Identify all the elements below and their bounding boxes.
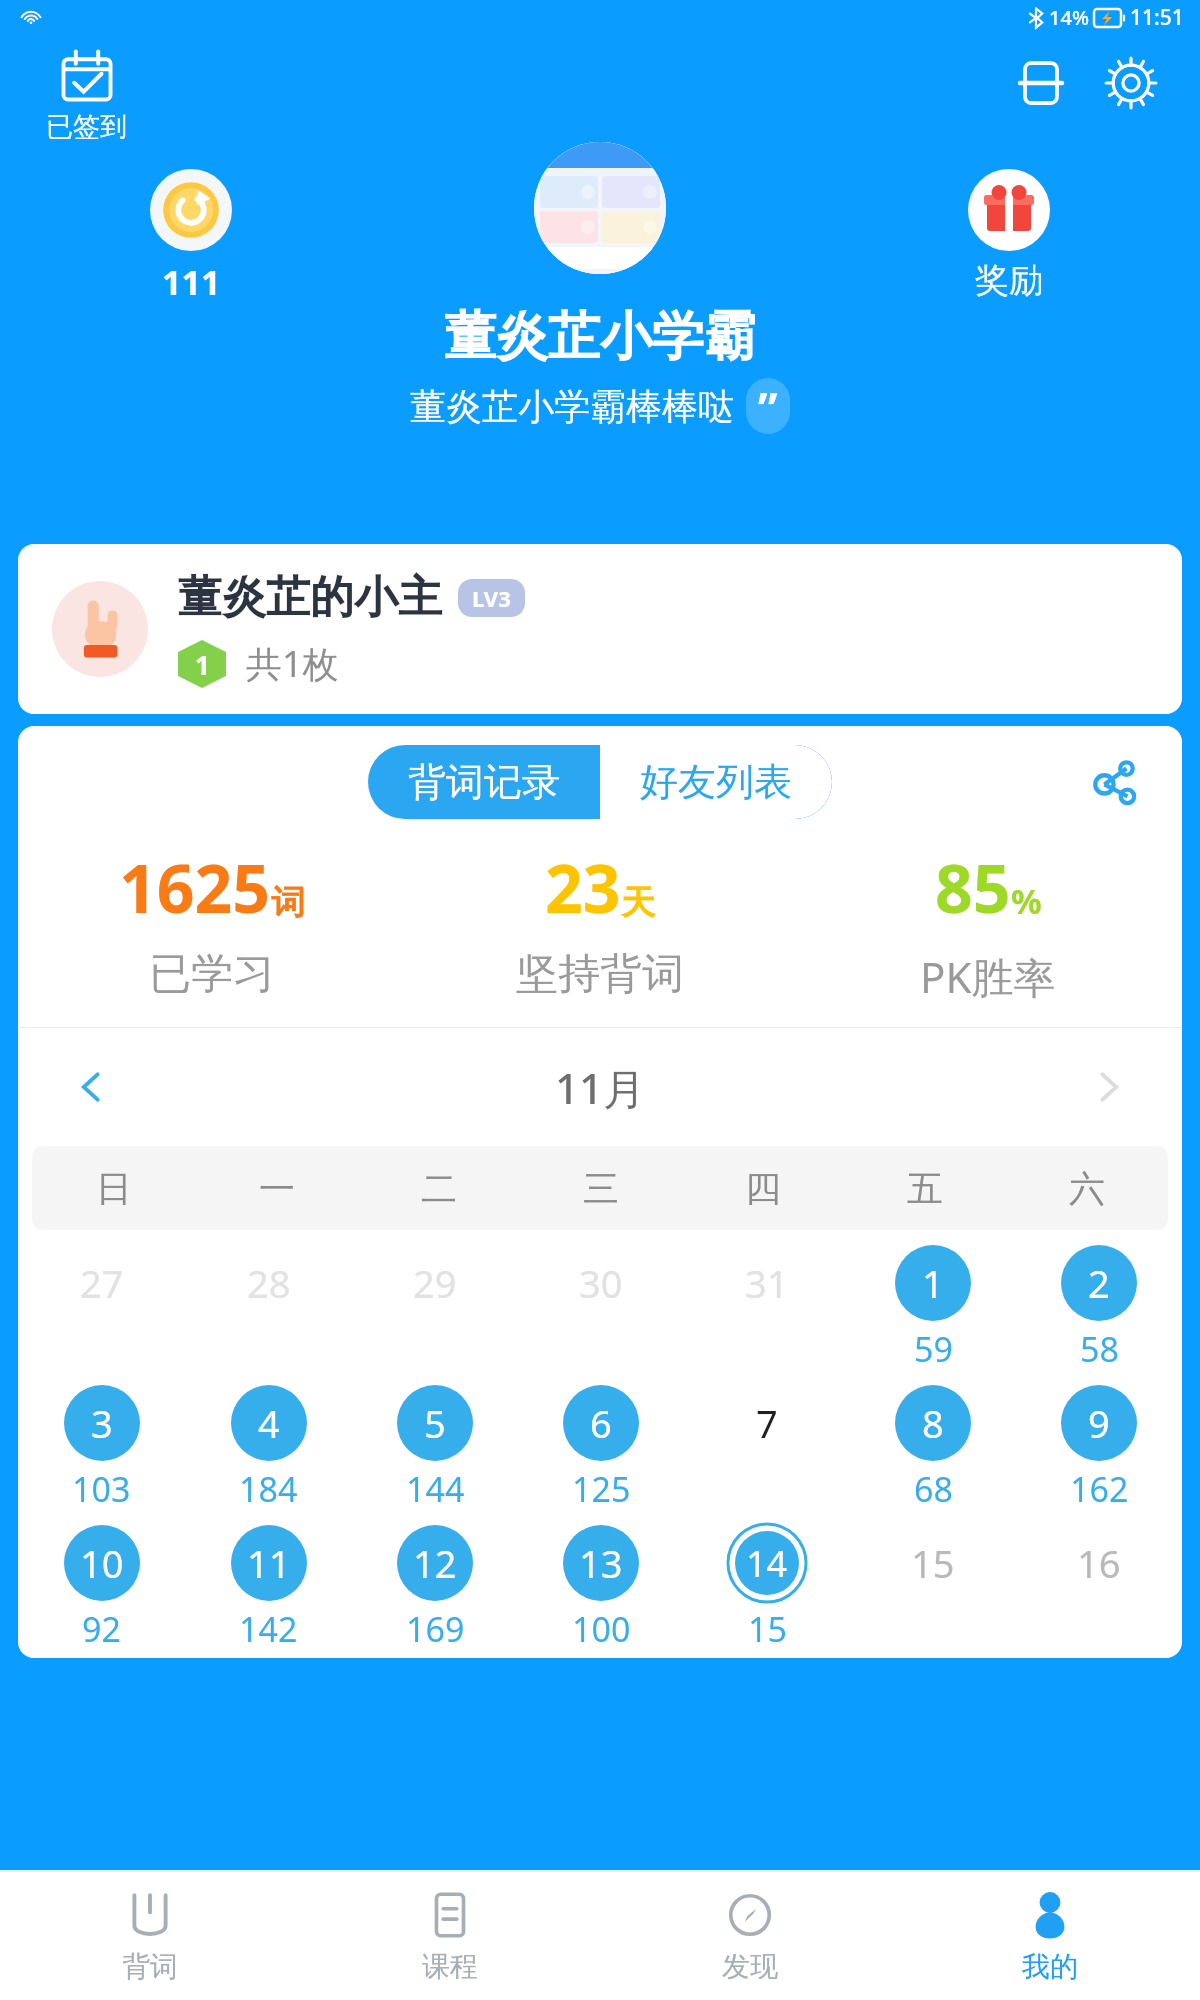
button[interactable]: Share xyxy=(1082,750,1146,814)
staticText: 6 xyxy=(590,1397,612,1449)
staticText: 1625 xyxy=(119,842,271,932)
staticText: 董炎芷的小主 xyxy=(178,570,442,625)
button[interactable]: 12 xyxy=(352,1524,518,1650)
staticText: 14% xyxy=(1049,4,1089,31)
staticText: 30 xyxy=(579,1257,623,1309)
button[interactable]: 奖励 xyxy=(968,169,1050,302)
staticText: 7 xyxy=(756,1397,778,1449)
staticText: 142 xyxy=(239,1606,298,1650)
staticText: 58 xyxy=(1080,1326,1119,1370)
button[interactable]: 我的 xyxy=(900,1872,1200,2000)
button[interactable]: 2 xyxy=(1016,1244,1182,1370)
button[interactable]: 背词记录 xyxy=(368,745,600,819)
button[interactable]: 5 xyxy=(352,1384,518,1510)
button[interactable]: Scan xyxy=(1010,52,1072,114)
staticText: 125 xyxy=(572,1466,631,1510)
button[interactable]: 28 xyxy=(185,1244,352,1370)
staticText: 100 xyxy=(572,1606,631,1650)
staticText: 8 xyxy=(922,1397,944,1449)
button[interactable]: 15 xyxy=(850,1524,1016,1650)
staticText: 背词 xyxy=(122,1949,178,1984)
staticText: 11 xyxy=(247,1537,291,1589)
staticText: % xyxy=(1011,878,1042,924)
staticText: 背词记录 xyxy=(408,758,560,806)
button[interactable]: Settings xyxy=(1100,52,1162,114)
staticText: 23 xyxy=(545,842,621,932)
button[interactable]: 13 xyxy=(518,1524,684,1650)
staticText: 1 xyxy=(922,1257,944,1309)
staticText: 2 xyxy=(1088,1257,1110,1309)
button[interactable]: 6 xyxy=(518,1384,684,1510)
button[interactable]: 课程 xyxy=(300,1872,600,2000)
staticText: 坚持背词 xyxy=(516,948,684,1001)
button[interactable]: Previous month xyxy=(58,1054,124,1120)
button[interactable]: 29 xyxy=(352,1244,518,1370)
staticText: 16 xyxy=(1077,1537,1121,1589)
staticText: 169 xyxy=(406,1606,465,1650)
staticText: 12 xyxy=(413,1537,457,1589)
button[interactable]: 董炎芷的小主 xyxy=(18,544,1182,714)
button[interactable]: 发现 xyxy=(600,1872,900,2000)
staticText: 好友列表 xyxy=(640,758,792,806)
staticText: 董炎芷小学霸 xyxy=(444,304,756,370)
button[interactable]: 已签到 xyxy=(46,48,127,144)
button[interactable]: 16 xyxy=(1016,1524,1182,1650)
staticText: 5 xyxy=(424,1397,446,1449)
staticText: 已学习 xyxy=(149,948,275,1001)
button[interactable]: 10 xyxy=(18,1524,185,1650)
staticText: 162 xyxy=(1070,1466,1129,1510)
button[interactable]: 14 xyxy=(684,1524,850,1650)
staticText: PK胜率 xyxy=(920,948,1056,1005)
staticText: LV3 xyxy=(472,583,511,613)
staticText: 一 xyxy=(259,1166,295,1211)
staticText: 六 xyxy=(1069,1166,1105,1211)
staticText: 发现 xyxy=(722,1949,778,1984)
button[interactable]: 27 xyxy=(18,1244,185,1370)
button[interactable]: 好友列表 xyxy=(600,745,832,819)
staticText: 15 xyxy=(911,1537,955,1589)
staticText: 3 xyxy=(91,1397,113,1449)
staticText: ” xyxy=(758,378,778,434)
staticText: 词 xyxy=(271,881,305,924)
staticText: 二 xyxy=(421,1166,457,1211)
staticText: 课程 xyxy=(422,1949,478,1984)
staticText: 59 xyxy=(914,1326,953,1370)
button[interactable]: 3 xyxy=(18,1384,185,1510)
staticText: 11月 xyxy=(555,1059,646,1116)
staticText: 27 xyxy=(80,1257,124,1309)
staticText: 144 xyxy=(406,1466,465,1510)
staticText: 13 xyxy=(579,1537,623,1589)
staticText: 天 xyxy=(621,881,655,924)
staticText: 三 xyxy=(583,1166,619,1211)
button[interactable]: 111 xyxy=(150,169,232,305)
button[interactable]: 31 xyxy=(684,1244,850,1370)
button[interactable]: 11 xyxy=(185,1524,352,1650)
button[interactable]: 7 xyxy=(684,1384,850,1510)
staticText: 29 xyxy=(413,1257,457,1309)
button[interactable]: 8 xyxy=(850,1384,1016,1510)
staticText: 184 xyxy=(239,1466,298,1510)
staticText: 10 xyxy=(80,1537,124,1589)
staticText: 1 xyxy=(195,647,210,682)
staticText: 15 xyxy=(748,1606,787,1650)
button[interactable]: 9 xyxy=(1016,1384,1182,1510)
staticText: 14 xyxy=(746,1539,788,1588)
staticText: 董炎芷小学霸棒棒哒 xyxy=(410,384,734,429)
staticText: 五 xyxy=(907,1166,943,1211)
staticText: 11:51 xyxy=(1130,3,1184,32)
button[interactable]: 4 xyxy=(185,1384,352,1510)
button[interactable]: 30 xyxy=(518,1244,684,1370)
button[interactable]: 背词 xyxy=(0,1872,300,2000)
button[interactable]: Next month xyxy=(1076,1054,1142,1120)
staticText: 31 xyxy=(745,1257,789,1309)
button[interactable]: 1 xyxy=(850,1244,1016,1370)
staticText: 68 xyxy=(914,1466,953,1510)
button[interactable]: Avatar xyxy=(534,142,666,274)
staticText: 92 xyxy=(82,1606,121,1650)
staticText: 9 xyxy=(1088,1397,1110,1449)
button[interactable]: Quote xyxy=(746,378,790,434)
staticText: 奖励 xyxy=(975,259,1043,302)
staticText: 4 xyxy=(258,1397,280,1449)
staticText: 四 xyxy=(745,1166,781,1211)
staticText: 28 xyxy=(247,1257,291,1309)
